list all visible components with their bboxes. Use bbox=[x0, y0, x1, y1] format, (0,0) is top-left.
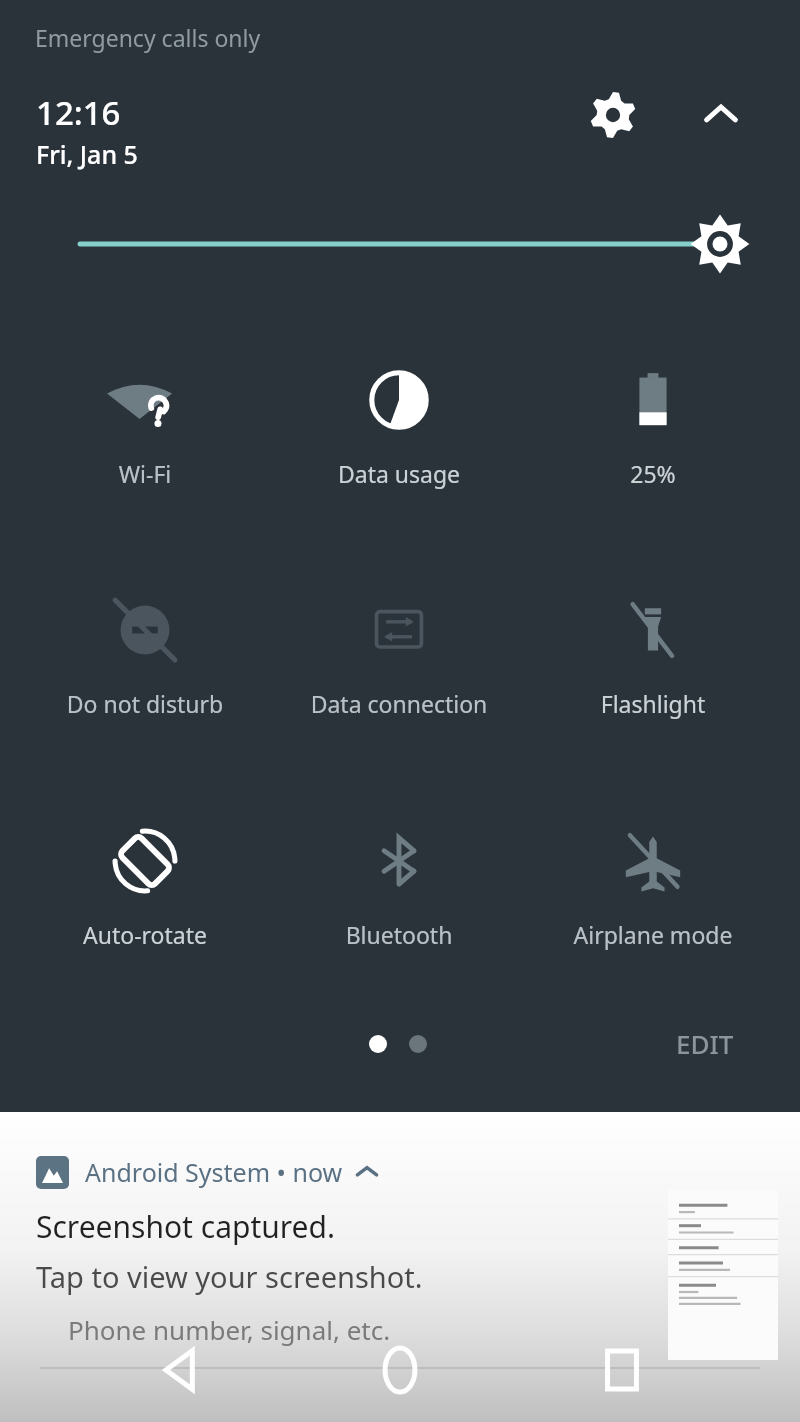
button[interactable] bbox=[526, 568, 780, 708]
button[interactable]: EDIT bbox=[640, 1010, 770, 1076]
button[interactable]: Brightness bbox=[0, 205, 800, 283]
staticText: 12:16 bbox=[36, 90, 121, 135]
button[interactable]: Home bbox=[350, 1330, 450, 1410]
staticText: Do not disturb bbox=[18, 688, 272, 719]
staticText: Wi-Fi bbox=[18, 458, 272, 489]
staticText: Emergency calls only bbox=[35, 22, 261, 53]
button[interactable]: Settings bbox=[578, 80, 648, 150]
staticText: Tap to view your screenshot. bbox=[36, 1257, 423, 1296]
button[interactable] bbox=[272, 568, 526, 708]
staticText: Data usage bbox=[272, 458, 526, 489]
staticText: Airplane mode bbox=[526, 919, 780, 950]
staticText: Screenshot captured. bbox=[36, 1206, 335, 1247]
button[interactable]: Screenshot captured. bbox=[36, 1206, 423, 1296]
button[interactable] bbox=[526, 799, 780, 939]
button[interactable]: Android System • now bbox=[36, 1152, 379, 1192]
button[interactable] bbox=[272, 799, 526, 939]
staticText: Data connection bbox=[272, 688, 526, 719]
staticText: 25% bbox=[526, 458, 780, 489]
staticText: Flashlight bbox=[526, 688, 780, 719]
button[interactable] bbox=[18, 568, 272, 708]
button[interactable] bbox=[18, 799, 272, 939]
button[interactable]: Recents bbox=[572, 1330, 672, 1410]
button[interactable] bbox=[18, 338, 272, 478]
button[interactable]: Back bbox=[130, 1330, 230, 1410]
button[interactable] bbox=[526, 338, 780, 478]
staticText: Auto-rotate bbox=[18, 919, 272, 950]
staticText: Bluetooth bbox=[272, 919, 526, 950]
button[interactable]: Collapse bbox=[686, 80, 756, 150]
staticText: Android System • now bbox=[85, 1155, 343, 1189]
button[interactable] bbox=[272, 338, 526, 478]
staticText: Fri, Jan 5 bbox=[36, 137, 138, 171]
staticText: EDIT bbox=[676, 1026, 734, 1061]
staticText: Phone number, signal, etc. bbox=[68, 1312, 391, 1347]
